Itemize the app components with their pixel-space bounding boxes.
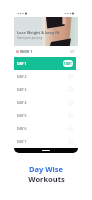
staticText: DAY 6: [17, 126, 27, 131]
staticText: WEEK 1: [20, 49, 33, 54]
button[interactable]: DAY 7: [14, 135, 76, 148]
staticText: START: [64, 62, 72, 66]
button[interactable]: DAY 5: [14, 109, 76, 122]
other: Start workout: [68, 126, 73, 131]
other: Start workout: [68, 74, 73, 79]
staticText: DAY 3: [17, 87, 27, 92]
button[interactable]: DAY 1: [14, 57, 76, 70]
staticText: DAY 2: [17, 74, 27, 79]
other: Start workout: [68, 100, 73, 105]
button[interactable]: DAY 6: [14, 122, 76, 135]
staticText: 0/7: [70, 50, 75, 54]
staticText: DAY 5: [17, 113, 27, 118]
button[interactable]: DAY 3: [14, 83, 76, 96]
staticText: DAY 4: [17, 100, 27, 105]
staticText: DAY 7: [17, 139, 27, 144]
button[interactable]: DAY 2: [14, 70, 76, 83]
staticText: Workouts: [28, 174, 65, 184]
button[interactable]: START: [63, 60, 73, 67]
staticText: Lose Weight & keep fit: [17, 30, 60, 35]
button[interactable]: DAY 4: [14, 96, 76, 109]
other: Start workout: [68, 87, 73, 92]
staticText: Start your journey: [17, 36, 43, 40]
other: Start workout: [68, 139, 73, 144]
other: Start workout: [68, 113, 73, 118]
staticText: Day Wise: [29, 164, 63, 174]
staticText: DAY 1: [17, 61, 27, 66]
